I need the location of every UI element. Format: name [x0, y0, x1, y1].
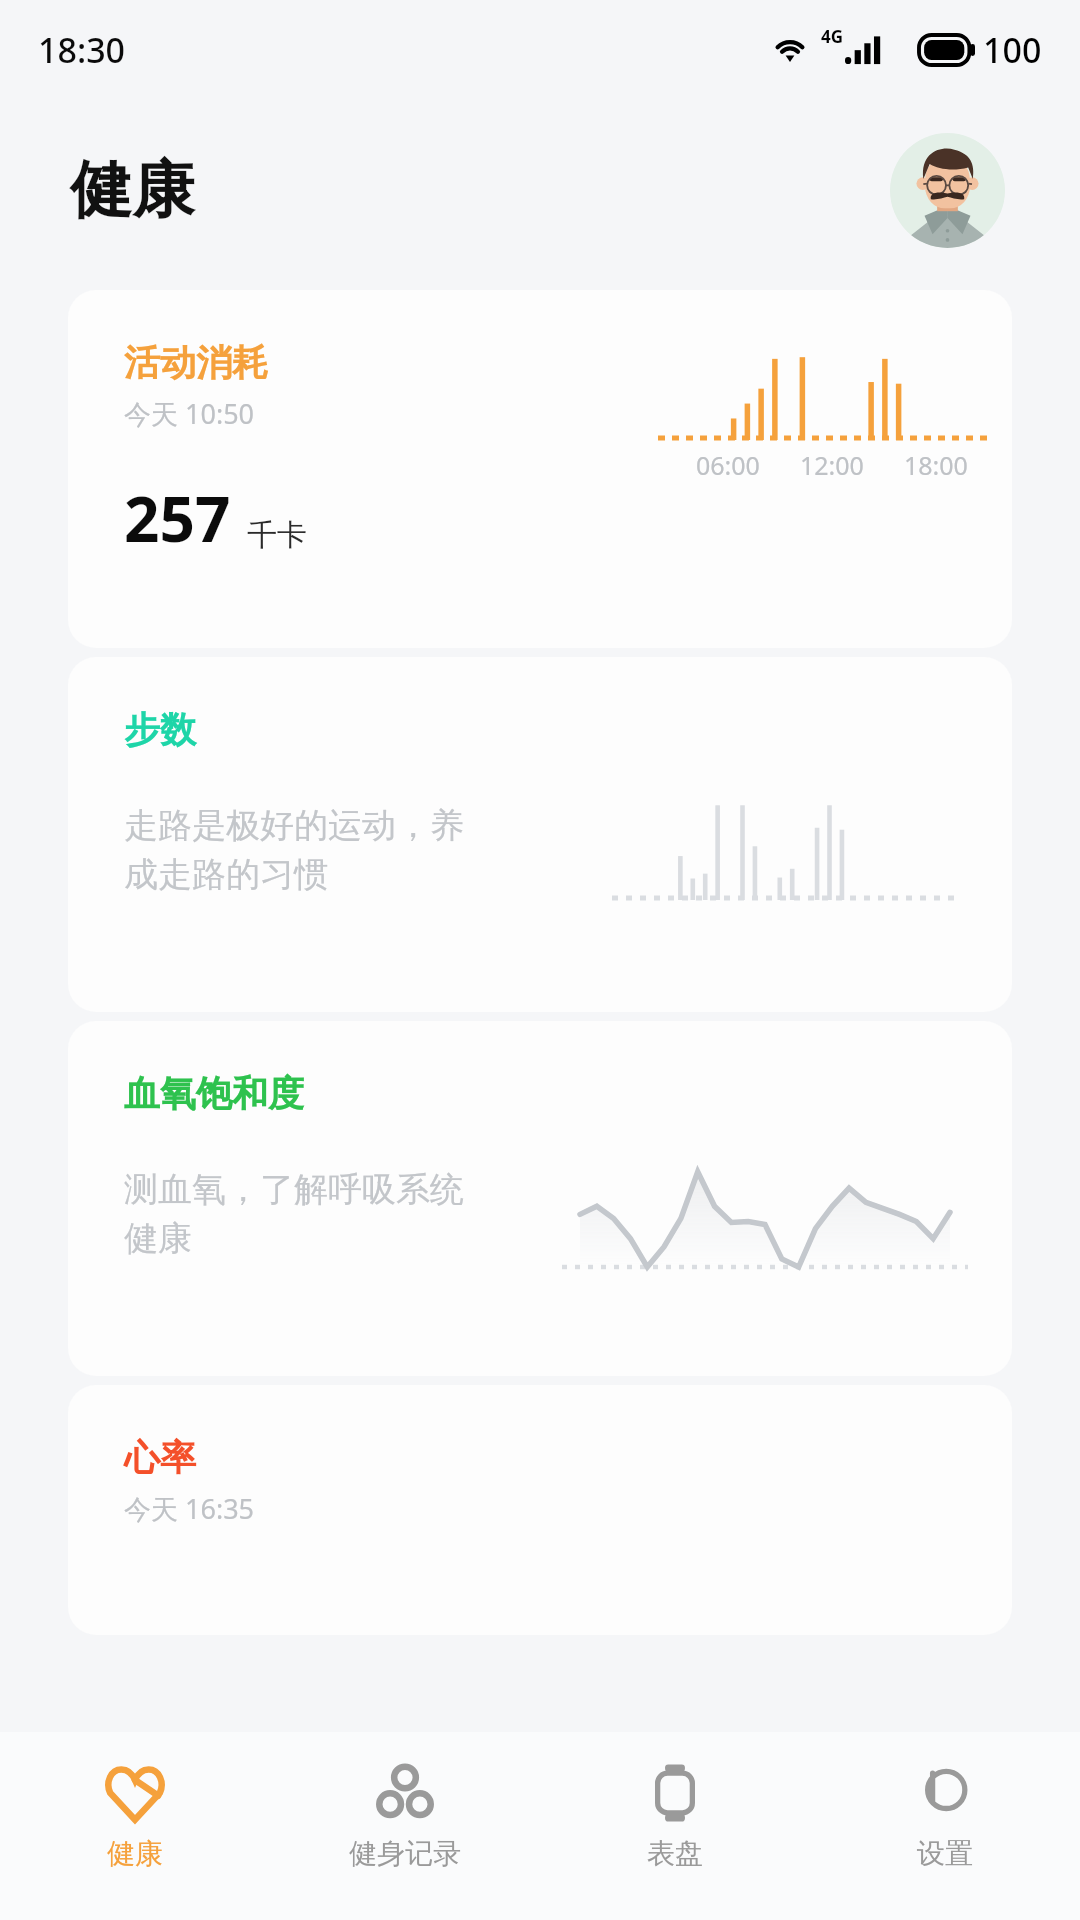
button[interactable]: 设置 [810, 1732, 1080, 1920]
staticText: 18:30 [38, 27, 126, 73]
staticText: 健康 [70, 151, 194, 229]
staticText: 设置 [917, 1836, 973, 1871]
button[interactable]: 健身记录 [270, 1732, 540, 1920]
button[interactable]: 健康 [0, 1732, 270, 1920]
staticText: 表盘 [647, 1836, 703, 1871]
staticText: 257 [124, 476, 231, 560]
staticText: 今天 10:50 [124, 395, 255, 432]
button[interactable]: Profile [890, 133, 1005, 248]
button[interactable]: 心率 [68, 1385, 1012, 1635]
button[interactable]: 活动消耗 [68, 290, 1012, 648]
staticText: 心率 [124, 1435, 196, 1480]
staticText: 12:00 [800, 448, 864, 482]
staticText: 测血氧，了解呼吸系统 健康 [124, 1168, 464, 1260]
staticText: 4G [821, 25, 844, 48]
staticText: 血氧饱和度 [124, 1071, 304, 1116]
button[interactable]: 表盘 [540, 1732, 810, 1920]
staticText: 100 [983, 27, 1042, 73]
staticText: 今天 16:35 [124, 1490, 255, 1527]
staticText: 千卡 [247, 516, 307, 554]
staticText: 健身记录 [349, 1836, 461, 1871]
staticText: 活动消耗 [124, 340, 268, 385]
button[interactable]: 步数 [68, 657, 1012, 1012]
staticText: 走路是极好的运动，养 成走路的习惯 [124, 804, 464, 896]
staticText: 步数 [124, 707, 196, 752]
staticText: 健康 [107, 1836, 163, 1871]
staticText: 06:00 [696, 448, 760, 482]
button[interactable]: 血氧饱和度 [68, 1021, 1012, 1376]
staticText: 18:00 [904, 448, 968, 482]
